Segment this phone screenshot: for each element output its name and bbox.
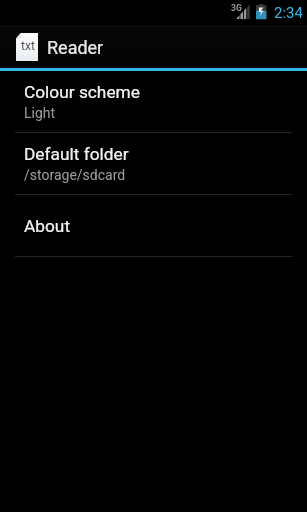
button[interactable]: Colour scheme [0, 71, 307, 132]
button[interactable]: Default folder [0, 133, 307, 194]
staticText: Colour scheme [24, 82, 140, 102]
button[interactable]: Reader app icon [0, 25, 116, 68]
staticText: Default folder [24, 144, 129, 164]
button[interactable]: About [0, 195, 307, 256]
other: Reader app icon [16, 33, 38, 61]
staticText: 2:34 [274, 4, 303, 22]
staticText: txt [21, 39, 35, 53]
staticText: About [24, 216, 71, 236]
staticText: /storage/sdcard [24, 167, 126, 183]
staticText: 3G [231, 3, 242, 13]
staticText: Light [24, 105, 56, 121]
staticText: Reader [47, 37, 104, 58]
